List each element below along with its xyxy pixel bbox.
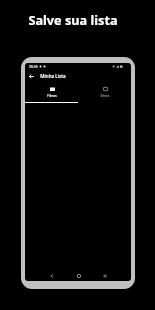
staticText: 05:55 <box>29 65 38 69</box>
staticText: Salve sua lista <box>28 11 118 28</box>
button[interactable]: Back <box>26 71 36 81</box>
button[interactable]: Recent apps <box>100 271 109 280</box>
staticText: Minha Lista <box>40 73 66 79</box>
button[interactable]: Filmes <box>25 82 78 102</box>
button[interactable]: Home <box>74 271 83 280</box>
staticText: Filmes <box>47 94 57 98</box>
button[interactable]: Séries <box>78 82 131 102</box>
staticText: Séries <box>100 94 110 98</box>
button[interactable]: Back <box>47 271 56 280</box>
